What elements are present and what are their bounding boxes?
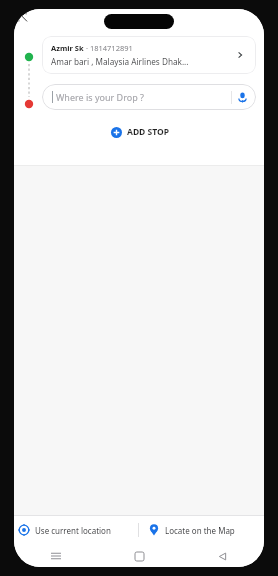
button[interactable]: Voice search	[232, 85, 252, 109]
staticText: Where is your Drop ?	[56, 91, 231, 103]
button[interactable]: Azmir Sk	[42, 36, 256, 74]
button[interactable]: Where is your Drop ?	[42, 84, 256, 110]
button[interactable]: Home	[128, 545, 150, 567]
staticText: · 1814712891	[84, 43, 133, 53]
staticText: ADD STOP	[127, 126, 169, 138]
button[interactable]: Use current location	[14, 516, 138, 544]
button[interactable]: Back	[211, 545, 233, 567]
staticText: Locate on the Map	[165, 525, 235, 536]
button[interactable]: Recent apps	[45, 545, 67, 567]
other: Open pickup details	[233, 48, 247, 62]
staticText: Amar bari , Malaysia Airlines Dhak...	[51, 56, 189, 67]
staticText: Use current location	[35, 525, 111, 536]
staticText: Azmir Sk	[51, 43, 84, 53]
button[interactable]: ADD STOP	[105, 123, 175, 141]
button[interactable]: Locate on the Map	[139, 516, 264, 544]
